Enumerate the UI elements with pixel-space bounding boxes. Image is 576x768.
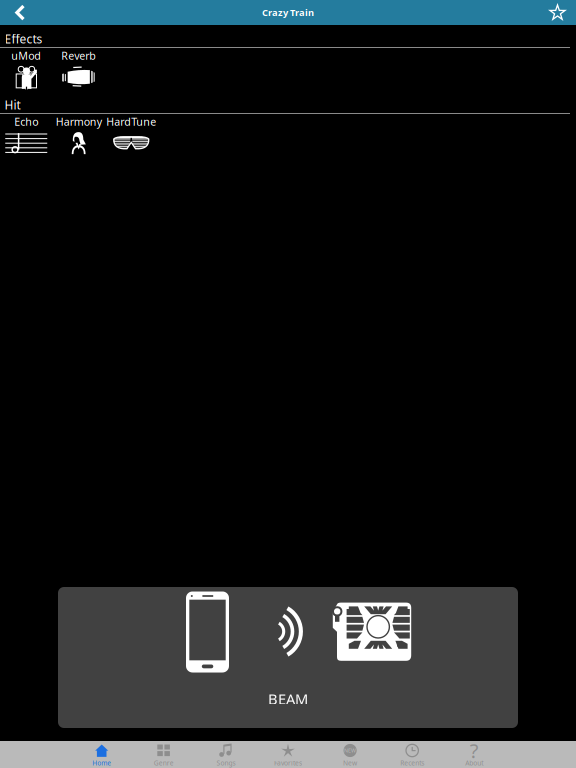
staticText: NEW — [344, 747, 356, 754]
staticText: Genre — [154, 758, 174, 767]
button[interactable]: Reverb — [52, 48, 105, 91]
button[interactable]: Favorites — [257, 741, 319, 768]
staticText: ? — [470, 737, 479, 764]
staticText: Effects — [5, 31, 43, 47]
button[interactable]: Add to favorites — [530, 0, 576, 25]
staticText: Echo — [14, 114, 38, 129]
button[interactable]: Recents — [381, 741, 443, 768]
staticText: Recents — [400, 758, 424, 767]
staticText: Reverb — [61, 48, 96, 63]
staticText: Crazy Train — [262, 6, 314, 19]
button[interactable]: Genre — [133, 741, 195, 768]
button[interactable]: uMod — [0, 48, 52, 91]
staticText: Home — [92, 758, 111, 767]
staticText: New — [343, 758, 357, 767]
staticText: BEAM — [268, 689, 308, 708]
button[interactable]: NEW — [319, 741, 381, 768]
staticText: HardTune — [106, 114, 156, 129]
button[interactable]: Songs — [195, 741, 257, 768]
staticText: Songs — [216, 758, 235, 767]
staticText: Hit — [5, 97, 21, 113]
staticText: Favorites — [274, 758, 302, 767]
button[interactable]: Echo — [0, 114, 52, 157]
button[interactable]: HardTune — [105, 114, 157, 157]
staticText: About — [465, 758, 483, 767]
staticText: uMod — [11, 48, 41, 63]
button[interactable]: Home — [71, 741, 133, 768]
button[interactable]: Harmony — [52, 114, 105, 157]
button[interactable]: ? — [443, 741, 505, 768]
button[interactable]: Back — [0, 0, 46, 25]
staticText: Harmony — [56, 114, 102, 129]
button[interactable]: BEAM — [58, 587, 518, 728]
